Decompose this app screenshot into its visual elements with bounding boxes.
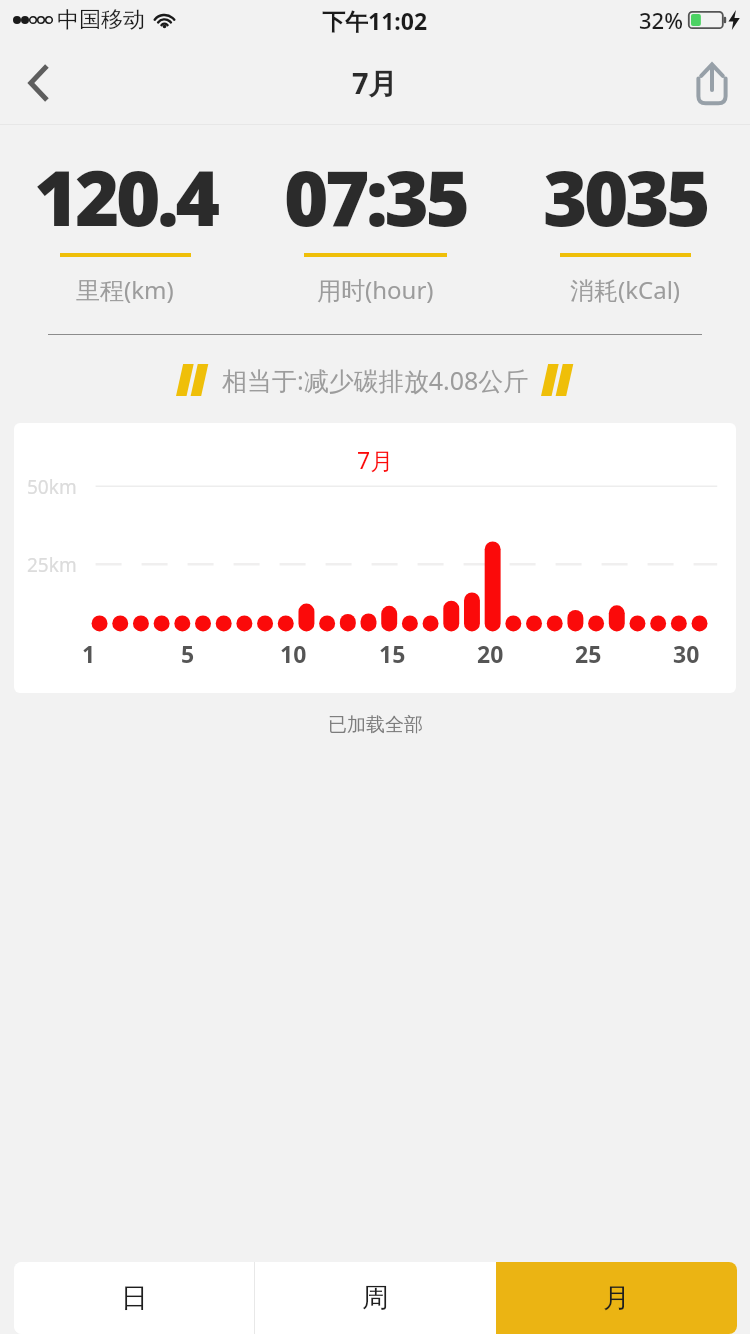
staticText: 中国移动 <box>57 6 145 34</box>
button[interactable]: 月 <box>496 1262 737 1334</box>
staticText: 用时(hour) <box>317 273 434 306</box>
staticText: 50km <box>27 474 77 500</box>
staticText: 15 <box>379 638 406 669</box>
staticText: 1 <box>82 638 96 669</box>
staticText: 20 <box>477 638 504 669</box>
staticText: 月 <box>603 1281 630 1315</box>
staticText: 10 <box>280 638 307 669</box>
staticText: 32% <box>639 5 683 35</box>
button[interactable]: 日 <box>14 1262 254 1334</box>
staticText: 120.4 <box>34 145 217 249</box>
staticText: 7月 <box>357 444 394 475</box>
staticText: 3035 <box>543 145 708 249</box>
staticText: 消耗(kCal) <box>570 273 681 306</box>
staticText: 5 <box>181 638 195 669</box>
staticText: 相当于:减少碳排放4.08公斤 <box>222 363 529 397</box>
staticText: 周 <box>362 1281 389 1315</box>
staticText: 25 <box>575 638 602 669</box>
staticText: 里程(km) <box>76 273 174 306</box>
staticText: 下午11:02 <box>322 5 428 36</box>
staticText: 已加载全部 <box>328 713 423 737</box>
button[interactable]: Share <box>674 45 750 121</box>
button[interactable]: Back <box>0 45 76 121</box>
button[interactable]: 周 <box>255 1262 496 1334</box>
staticText: 25km <box>27 552 77 578</box>
staticText: 07:35 <box>284 145 467 249</box>
staticText: 30 <box>673 638 700 669</box>
staticText: 7月 <box>352 63 398 103</box>
staticText: 日 <box>121 1281 148 1315</box>
